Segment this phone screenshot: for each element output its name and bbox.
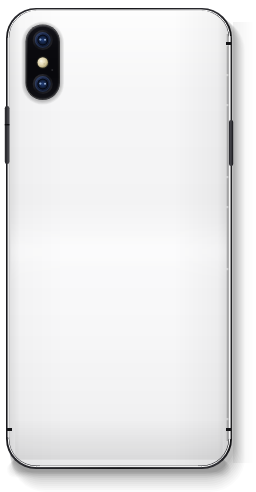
other: White iPhone X rear view product photo: [0, 0, 256, 492]
